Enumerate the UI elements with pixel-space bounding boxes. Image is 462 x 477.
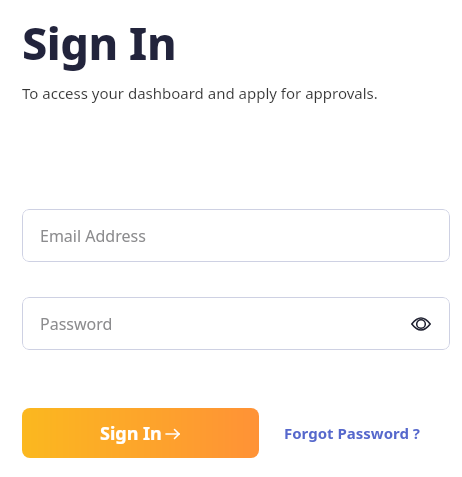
- staticText: Sign In: [22, 12, 177, 73]
- button[interactable]: Show password: [410, 313, 432, 335]
- button[interactable]: Password field: [22, 297, 450, 350]
- staticText: Forgot Password ?: [284, 423, 420, 443]
- staticText: To access your dashboard and apply for a…: [22, 83, 378, 103]
- button[interactable]: Forgot Password ?: [282, 417, 422, 449]
- staticText: Email Address: [40, 225, 146, 247]
- button[interactable]: Sign In: [22, 408, 259, 458]
- staticText: Password: [40, 313, 113, 335]
- button[interactable]: Email Address field: [22, 209, 450, 262]
- staticText: Sign In: [100, 421, 162, 446]
